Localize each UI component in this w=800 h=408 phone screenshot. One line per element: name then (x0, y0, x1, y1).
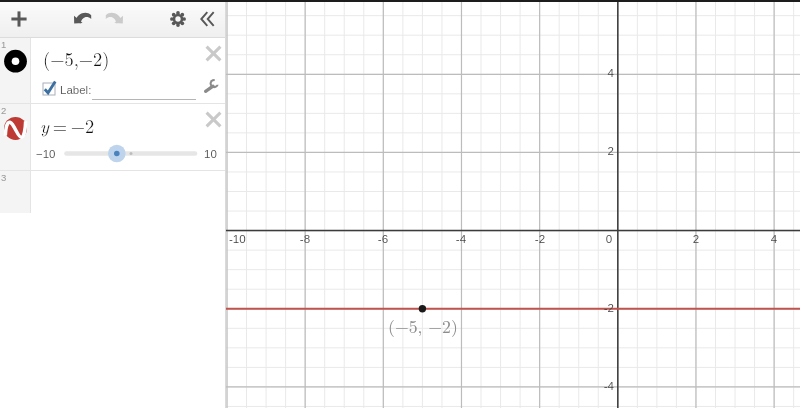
staticText: (−5,−2) (43, 45, 110, 71)
button[interactable]: Collapse expression list (194, 6, 220, 32)
staticText: (−5, −2) (388, 313, 458, 338)
staticText: 1 (1, 39, 7, 50)
staticText: 3 (1, 172, 7, 183)
button[interactable]: Parameter slider (63, 141, 199, 165)
staticText: -4 (574, 379, 614, 392)
staticText: 2 (1, 105, 7, 116)
button[interactable]: Undo (71, 5, 97, 31)
staticText: -10 (229, 232, 269, 245)
staticText: = −2 (49, 112, 95, 138)
button[interactable]: Delete expression (205, 45, 222, 62)
staticText: 4 (754, 232, 794, 245)
staticText: Label: (60, 84, 92, 97)
staticText: 4 (574, 66, 614, 79)
staticText: 2 (574, 144, 614, 157)
button[interactable]: Add expression (6, 6, 32, 32)
button[interactable]: Expression options (203, 79, 219, 95)
staticText: -8 (285, 232, 325, 245)
button[interactable]: Show label (43, 83, 55, 95)
staticText: y (40, 112, 49, 138)
staticText: -2 (520, 232, 560, 245)
staticText: 2 (676, 232, 716, 245)
staticText: −10 (36, 148, 56, 161)
staticText: -6 (363, 232, 403, 245)
button[interactable]: Settings (165, 6, 191, 32)
button[interactable]: Redo (100, 5, 126, 31)
staticText: -4 (441, 232, 481, 245)
staticText: -2 (574, 301, 614, 314)
button[interactable]: Delete expression (205, 111, 222, 128)
staticText: 10 (204, 148, 217, 161)
staticText: 0 (589, 232, 629, 245)
